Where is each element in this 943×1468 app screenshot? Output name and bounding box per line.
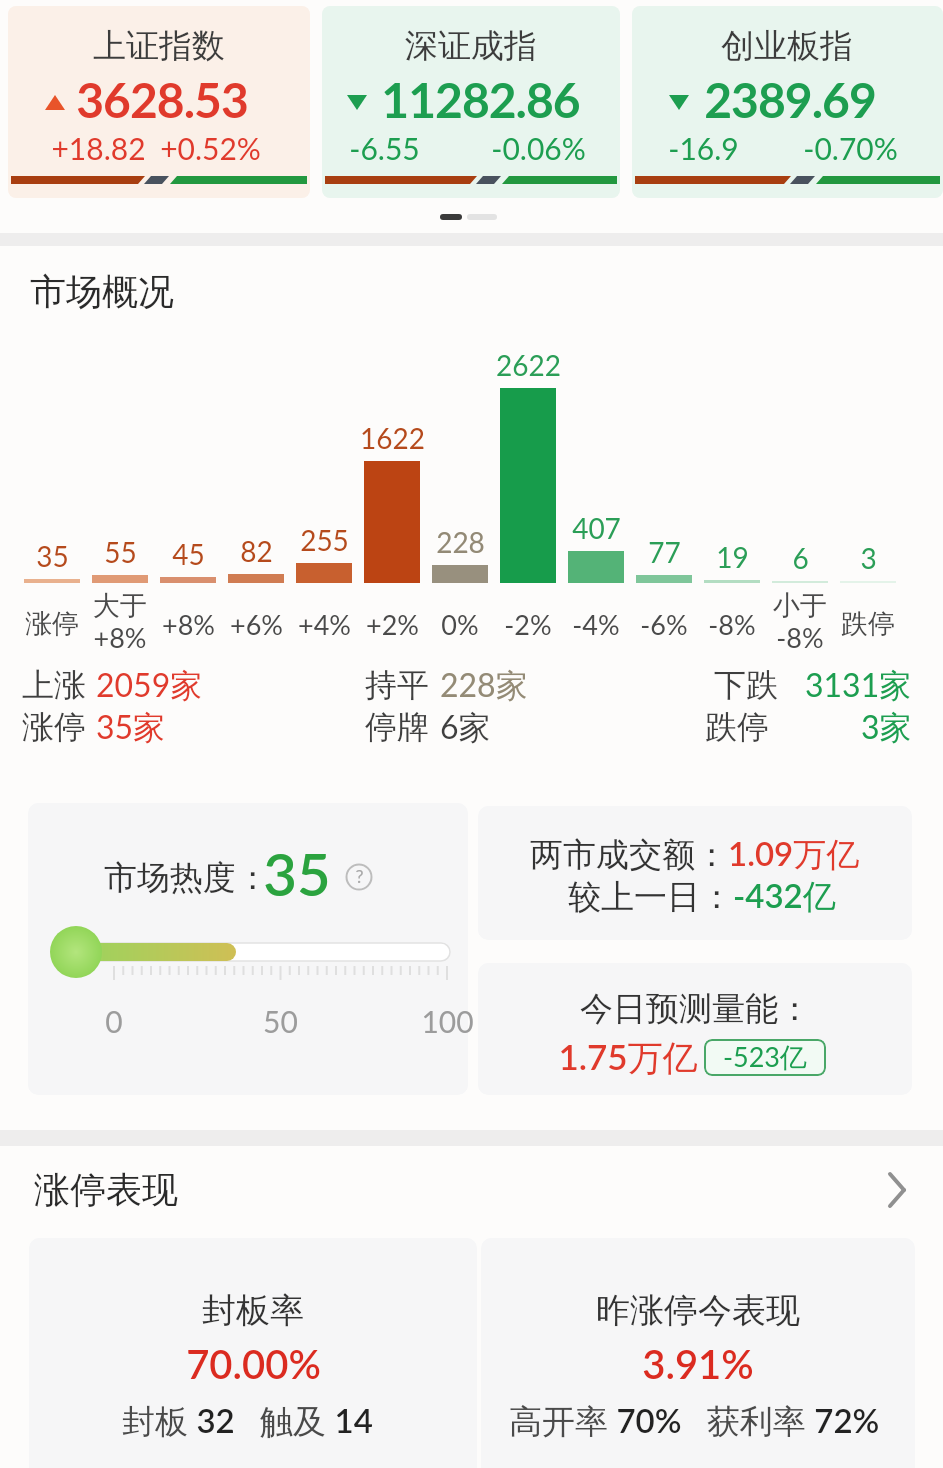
staticText: 上涨 [22,665,86,705]
staticText: +8% [162,608,215,640]
staticText: 255 [300,523,349,557]
staticText: 77 [648,535,681,569]
staticText: 持平 [365,665,429,705]
staticText: 停牌 [365,707,429,747]
staticText: +4% [298,608,351,640]
button[interactable] [8,6,310,198]
staticText: 1.75万亿 [558,1035,698,1080]
staticText: -0.06% [491,130,586,166]
staticText: 下跌 [714,665,778,705]
staticText: 涨停 [25,607,79,641]
staticText: 封板率 [202,1289,304,1332]
staticText: +18.82 [51,130,146,166]
staticText: 19 [716,540,749,574]
staticText: 两市成交额：1.09万亿 [530,833,860,875]
button[interactable] [478,806,912,940]
staticText: 涨停表现 [34,1167,178,1212]
staticText: -0.70% [803,130,898,166]
staticText: -16.9 [668,130,739,166]
staticText: 3.91% [642,1340,754,1388]
staticText: 70.00% [186,1340,321,1388]
staticText: 3 [860,541,877,575]
staticText: 深证成指 [405,25,537,67]
button[interactable] [322,6,620,198]
staticText: 2622 [496,348,561,382]
staticText: 大于 +8% [93,589,147,653]
staticText: 3家 [861,707,912,748]
staticText: 228 [436,525,485,559]
staticText: 2059家 [96,665,203,706]
staticText: +0.52% [160,130,261,166]
staticText: ? [355,865,364,887]
button[interactable] [632,6,943,198]
staticText: 35 [36,539,69,573]
staticText: 创业板指 [721,25,853,67]
staticText: 35家 [96,707,166,748]
staticText: 3628.53 [76,71,248,129]
staticText: 100 [421,1003,474,1039]
staticText: 高开率 70% 获利率 72% [509,1400,880,1442]
staticText: 0 [105,1003,123,1039]
staticText: +2% [366,608,419,640]
staticText: 今日预测量能： [580,988,811,1030]
button[interactable] [481,1238,915,1468]
staticText: 55 [104,535,137,569]
staticText: +6% [230,608,283,640]
staticText: -6.55 [349,130,420,166]
staticText: 407 [572,511,621,545]
staticText: 上证指数 [93,25,225,67]
staticText: 45 [172,537,205,571]
staticText: 昨涨停今表现 [596,1289,800,1332]
staticText: 3131家 [805,665,912,706]
staticText: 35 [263,839,331,909]
staticText: 跌停 [841,607,895,641]
staticText: -6% [640,608,688,640]
staticText: -8% [708,608,756,640]
button[interactable] [888,1172,908,1208]
staticText: -4% [572,608,620,640]
staticText: -2% [504,608,552,640]
staticText: -523亿 [723,1040,808,1075]
staticText: 涨停 [22,707,86,747]
staticText: 11282.86 [381,71,580,129]
staticText: 2389.69 [704,71,876,129]
staticText: 较上一日：-432亿 [568,875,836,917]
staticText: 封板 32 触及 14 [122,1400,373,1442]
staticText: 小于 -8% [773,589,827,653]
button[interactable] [478,963,912,1095]
button[interactable] [28,803,468,1095]
staticText: 1622 [360,421,425,455]
staticText: 0% [441,608,479,640]
staticText: 6家 [440,707,491,748]
staticText: 6 [792,541,809,575]
button[interactable] [29,1238,477,1468]
staticText: 跌停 [705,707,769,747]
staticText: 228家 [440,665,528,706]
staticText: 82 [240,534,273,568]
staticText: 市场热度： [104,857,269,899]
staticText: 50 [263,1003,298,1039]
staticText: 市场概况 [30,269,174,314]
